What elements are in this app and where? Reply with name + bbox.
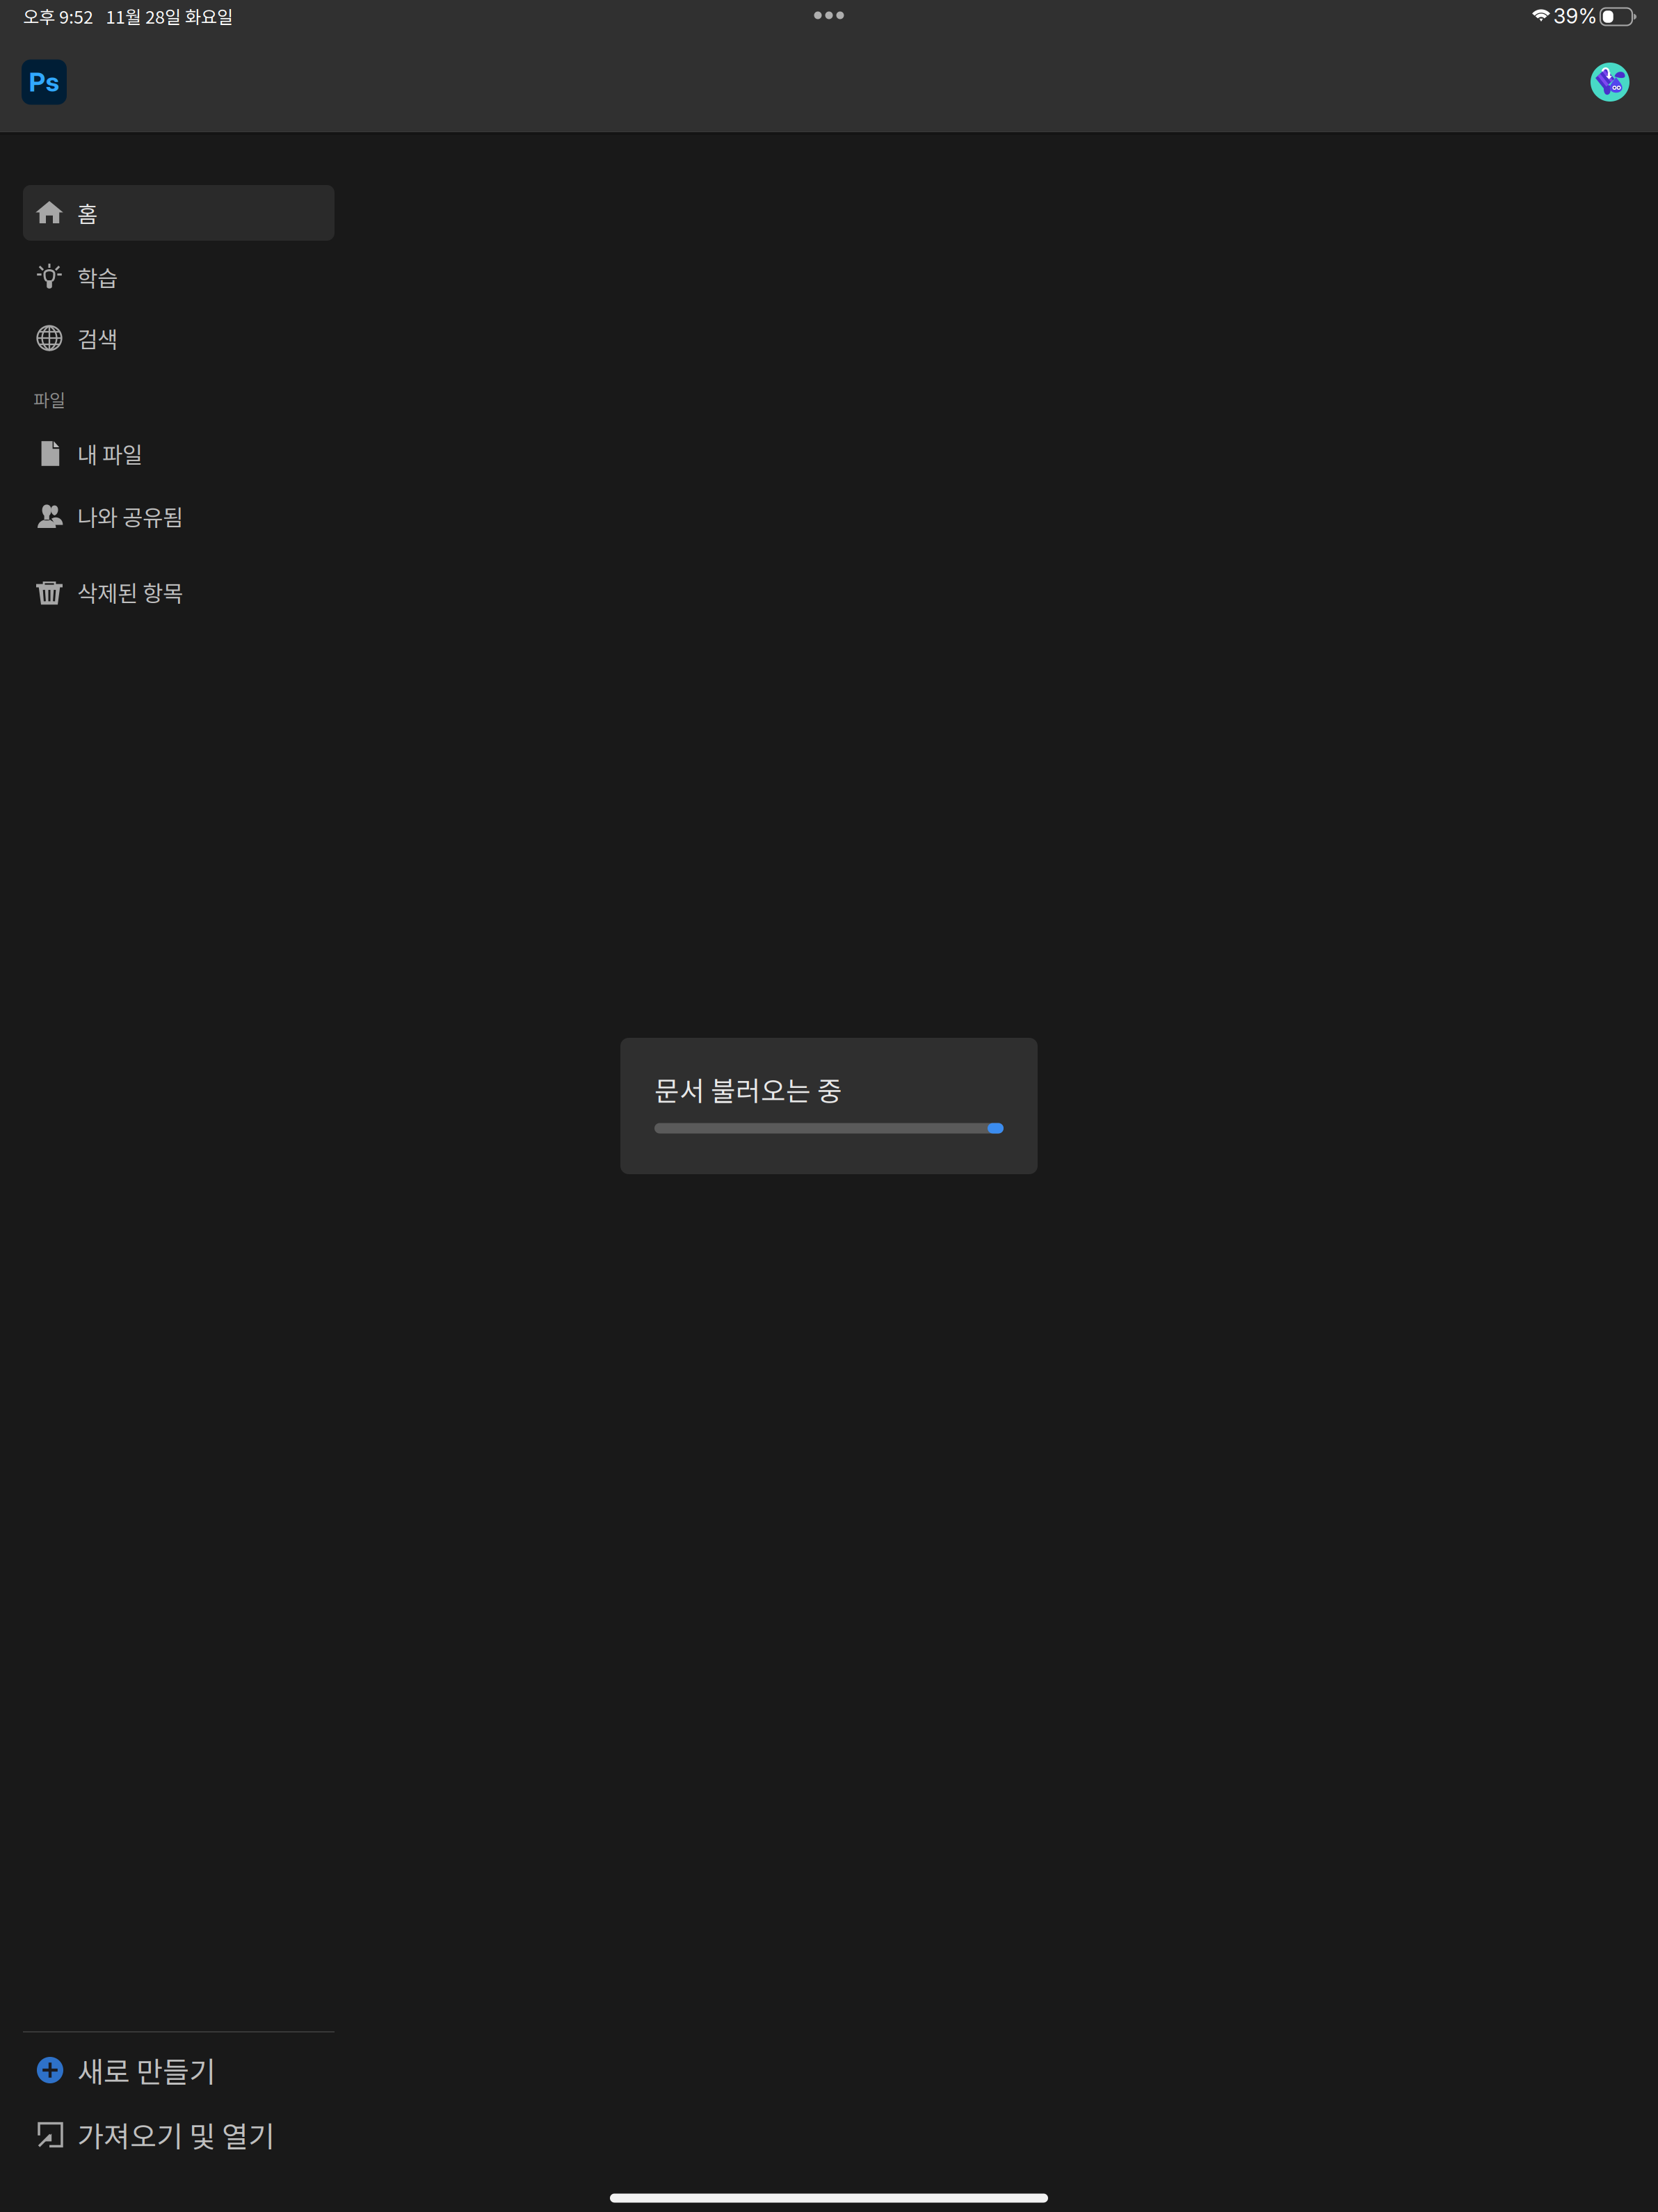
staticText: 새로 만들기 [77,2049,216,2091]
button[interactable]: 새로 만들기 [23,2042,335,2098]
staticText: Ps [29,66,59,98]
staticText: 가져오기 및 열기 [77,2114,275,2156]
button[interactable]: Account [1591,63,1629,102]
button[interactable]: 삭제된 항목 [23,564,335,620]
button[interactable]: 나와 공유됨 [23,488,335,544]
staticText: 문서 불러오는 중 [654,1070,842,1109]
staticText: 검색 [77,322,118,354]
staticText: 파일 [33,387,65,412]
button[interactable]: 학습 [23,249,335,305]
staticText: 39% [1553,4,1597,28]
staticText: 학습 [77,261,118,293]
button[interactable]: 가져오기 및 열기 [23,2107,335,2163]
staticText: 홈 [77,197,97,229]
staticText: 오후 9:52 11월 28일 화요일 [23,3,233,29]
staticText: 삭제된 항목 [77,576,183,608]
button[interactable]: 홈 [23,185,335,241]
button[interactable]: 내 파일 [23,426,335,481]
staticText: 내 파일 [77,437,143,470]
staticText: 나와 공유됨 [77,500,183,532]
button[interactable]: Photoshop [22,59,67,105]
button[interactable]: 검색 [23,310,335,366]
